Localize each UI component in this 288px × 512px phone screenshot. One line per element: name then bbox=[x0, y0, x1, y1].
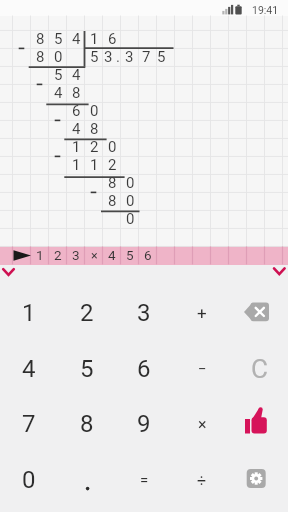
button[interactable] bbox=[230, 452, 288, 508]
staticText: 8 bbox=[108, 174, 117, 192]
staticText: 7 bbox=[22, 410, 36, 438]
staticText: 4 bbox=[22, 355, 36, 383]
staticText: 6 bbox=[108, 30, 117, 48]
staticText: 2 bbox=[108, 156, 117, 174]
staticText: 1 bbox=[72, 138, 81, 156]
staticText: 8 bbox=[108, 192, 117, 210]
staticText: 3 bbox=[104, 48, 113, 66]
button[interactable]: = bbox=[115, 452, 173, 508]
button[interactable] bbox=[266, 265, 288, 281]
staticText: = bbox=[140, 471, 149, 489]
button[interactable]: 2 bbox=[58, 285, 116, 341]
button[interactable] bbox=[0, 246, 288, 265]
staticText: 2 bbox=[54, 247, 62, 263]
staticText: 0 bbox=[22, 466, 36, 494]
staticText: 5 bbox=[54, 30, 63, 48]
button[interactable]: 6 bbox=[115, 341, 173, 397]
staticText: 2 bbox=[90, 138, 99, 156]
staticText: 5 bbox=[126, 247, 134, 263]
staticText: − bbox=[198, 360, 207, 378]
staticText: 6 bbox=[137, 355, 151, 383]
button[interactable]: + bbox=[173, 285, 231, 341]
staticText: 3 bbox=[125, 48, 134, 66]
button[interactable]: 7 bbox=[0, 396, 58, 452]
staticText: 0 bbox=[126, 210, 135, 228]
button[interactable] bbox=[230, 396, 288, 452]
button[interactable]: 9 bbox=[115, 396, 173, 452]
staticText: + bbox=[197, 303, 207, 323]
staticText: 1 bbox=[90, 30, 99, 48]
staticText: × bbox=[91, 248, 98, 263]
staticText: 8 bbox=[90, 120, 99, 138]
staticText: 9 bbox=[137, 410, 151, 438]
button[interactable]: C bbox=[230, 341, 288, 397]
button[interactable]: × bbox=[173, 396, 231, 452]
staticText: 4 bbox=[54, 84, 63, 102]
staticText: 5 bbox=[54, 66, 63, 84]
button[interactable]: − bbox=[173, 341, 231, 397]
staticText: 1 bbox=[22, 299, 36, 327]
staticText: 4 bbox=[72, 66, 81, 84]
button[interactable]: 1 bbox=[0, 285, 58, 341]
staticText: 5 bbox=[90, 48, 99, 66]
button[interactable]: 0 bbox=[0, 452, 58, 508]
staticText: 6 bbox=[144, 247, 152, 263]
staticText: 8 bbox=[72, 84, 81, 102]
staticText: 1 bbox=[90, 156, 99, 174]
staticText: 0 bbox=[126, 192, 135, 210]
button[interactable]: ÷ bbox=[173, 452, 231, 508]
staticText: 0 bbox=[90, 102, 99, 120]
staticText: 0 bbox=[108, 138, 117, 156]
staticText: 5 bbox=[80, 355, 94, 383]
staticText: 4 bbox=[108, 247, 116, 263]
staticText: 4 bbox=[72, 120, 81, 138]
staticText: 0 bbox=[126, 174, 135, 192]
button[interactable]: 3 bbox=[115, 285, 173, 341]
staticText: 6 bbox=[72, 102, 81, 120]
button[interactable] bbox=[0, 265, 22, 281]
button[interactable]: 4 bbox=[0, 341, 58, 397]
staticText: 3 bbox=[137, 299, 151, 327]
staticText: 8 bbox=[36, 30, 45, 48]
staticText: 1 bbox=[72, 156, 81, 174]
staticText: 4 bbox=[72, 30, 81, 48]
staticText: 8 bbox=[36, 48, 45, 66]
staticText: × bbox=[198, 415, 207, 434]
button[interactable]: 5 bbox=[58, 341, 116, 397]
staticText: 2 bbox=[80, 299, 94, 327]
staticText: . bbox=[116, 48, 120, 66]
staticText: 19:41 bbox=[252, 4, 279, 16]
staticText: 3 bbox=[72, 247, 80, 263]
staticText: 1 bbox=[36, 247, 44, 263]
staticText: C bbox=[251, 354, 268, 384]
button[interactable] bbox=[58, 452, 116, 508]
button[interactable]: 8 bbox=[58, 396, 116, 452]
staticText: 7 bbox=[142, 48, 151, 66]
button[interactable] bbox=[230, 285, 288, 341]
staticText: 0 bbox=[54, 48, 63, 66]
staticText: 8 bbox=[80, 410, 94, 438]
staticText: 5 bbox=[157, 48, 166, 66]
staticText: ÷ bbox=[197, 471, 207, 490]
